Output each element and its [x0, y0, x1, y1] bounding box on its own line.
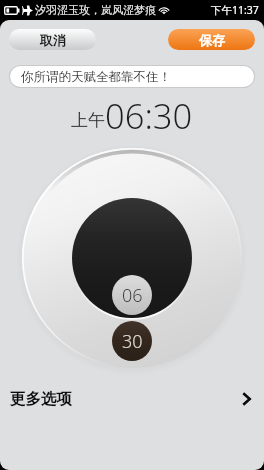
staticText: 上午 — [71, 110, 105, 131]
staticText: 更多选项 — [10, 389, 72, 409]
other: More options — [242, 392, 251, 406]
staticText: 30 — [122, 329, 143, 354]
button[interactable]: 30 — [112, 321, 152, 361]
button[interactable]: 06 — [112, 275, 152, 315]
staticText: 汐羽涩玉玫，岚风涩梦痕 — [35, 3, 156, 17]
button[interactable]: 保存 — [168, 29, 255, 50]
button[interactable]: 你所谓的天赋全都靠不住！ — [10, 66, 254, 87]
staticText: 06:30 — [105, 92, 193, 139]
staticText: 保存 — [199, 32, 225, 48]
staticText: 06 — [122, 283, 143, 308]
staticText: 下午11:37 — [211, 3, 259, 17]
button[interactable]: 取消 — [9, 29, 96, 50]
staticText: 你所谓的天赋全都靠不住！ — [21, 69, 171, 85]
staticText: 取消 — [40, 32, 66, 48]
button[interactable]: 更多选项 — [0, 384, 264, 414]
